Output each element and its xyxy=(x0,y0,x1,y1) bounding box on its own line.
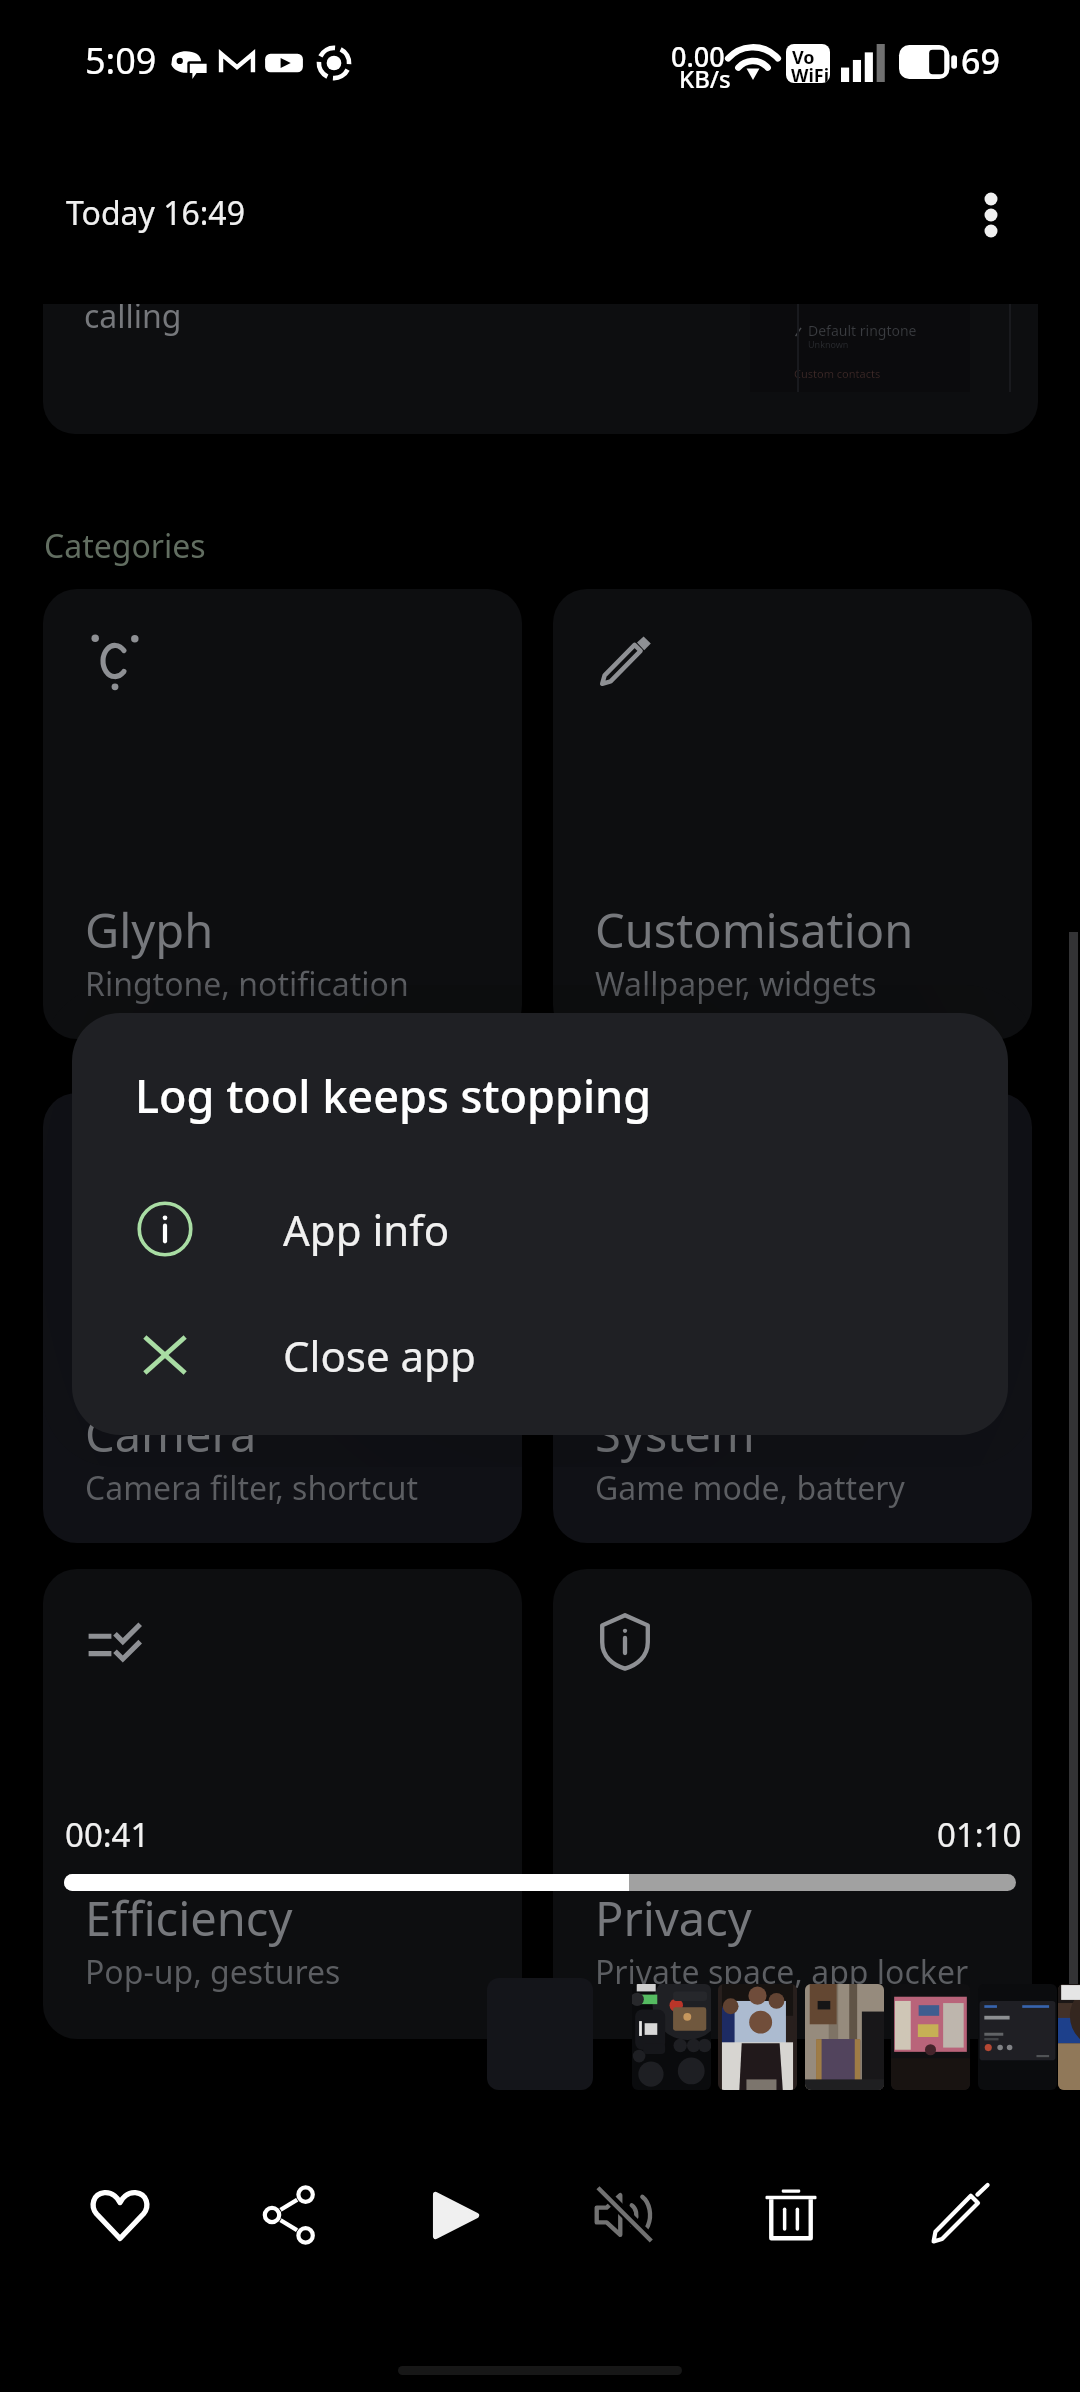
staticText: KB/s xyxy=(679,62,731,95)
button[interactable] xyxy=(978,1984,1057,2090)
button[interactable] xyxy=(632,1984,711,2090)
button[interactable]: Edit xyxy=(905,2160,1015,2270)
button[interactable] xyxy=(718,1984,797,2090)
staticText: Custom contacts xyxy=(794,366,881,381)
staticText: System xyxy=(595,1402,755,1466)
staticText: 69 xyxy=(961,38,1000,84)
button[interactable] xyxy=(805,1984,884,2090)
button[interactable] xyxy=(64,1874,1016,1891)
staticText: Camera filter, shortcut xyxy=(85,1466,419,1510)
staticText: 01:10 xyxy=(937,1812,1022,1857)
button[interactable]: App info xyxy=(72,1166,1008,1292)
button[interactable]: Efficiency xyxy=(43,1569,522,2039)
button[interactable]: Camera xyxy=(43,1093,522,1543)
staticText: 0.00 xyxy=(671,38,725,75)
staticText: Efficiency xyxy=(85,1886,293,1950)
staticText: Camera xyxy=(85,1402,257,1466)
staticText: Close app xyxy=(283,1327,476,1384)
staticText: 5:09 xyxy=(85,36,157,85)
staticText: Today 16:49 xyxy=(66,191,245,235)
button[interactable]: System xyxy=(553,1093,1032,1543)
staticText: Pop-up, gestures xyxy=(85,1950,341,1994)
button[interactable]: Delete xyxy=(736,2160,846,2270)
staticText: calling xyxy=(84,304,182,338)
button[interactable]: Close app xyxy=(72,1292,1008,1418)
staticText: Customisation xyxy=(595,898,914,962)
staticText: Game mode, battery xyxy=(595,1466,905,1510)
staticText: Categories xyxy=(44,524,206,568)
staticText: Default ringtone xyxy=(808,321,917,340)
staticText: WiFi xyxy=(791,63,830,83)
staticText: Private space, app locker xyxy=(595,1950,969,1994)
staticText: Wallpaper, widgets xyxy=(595,962,877,1006)
button[interactable] xyxy=(891,1984,970,2090)
staticText: Ringtone, notification xyxy=(85,962,409,1006)
button[interactable]: Unmute xyxy=(569,2160,679,2270)
staticText: Privacy xyxy=(595,1886,752,1950)
staticText: Glyph xyxy=(85,898,214,962)
button[interactable]: Privacy xyxy=(553,1569,1032,2039)
staticText: Vo xyxy=(792,45,815,70)
button[interactable]: Customisation xyxy=(553,589,1032,1039)
staticText: App info xyxy=(283,1201,450,1258)
button[interactable]: More options xyxy=(943,167,1039,263)
button[interactable] xyxy=(1058,1984,1080,2090)
staticText: Log tool keeps stopping xyxy=(135,1065,652,1126)
button[interactable]: Share xyxy=(235,2160,345,2270)
staticText: Unknown xyxy=(808,338,849,350)
button[interactable]: Play xyxy=(400,2160,510,2270)
staticText: 00:41 xyxy=(65,1812,150,1857)
button[interactable]: Glyph xyxy=(43,589,522,1039)
button[interactable]: Favourite xyxy=(65,2160,175,2270)
